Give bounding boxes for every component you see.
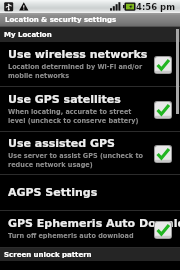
staticText: When locating, accurate to street — [8, 108, 132, 116]
button[interactable]: GPS Ephemeris Auto Download — [0, 211, 180, 248]
button[interactable]: Use GPS satellites — [0, 87, 180, 132]
staticText: Use server to assist GPS (uncheck to — [8, 152, 144, 160]
button[interactable]: Use assisted GPS — [0, 132, 180, 175]
staticText: reduce network usage) — [8, 161, 93, 169]
staticText: GPS Ephemeris Auto Download — [8, 217, 180, 230]
staticText: Use GPS satellites — [8, 93, 121, 106]
staticText: 4:56 pm — [136, 2, 176, 12]
staticText: Use wireless networks — [8, 48, 148, 61]
staticText: Turn off ephemeris auto download — [8, 232, 134, 240]
staticText: Screen unlock pattern — [4, 251, 92, 259]
staticText: My Location — [4, 31, 52, 39]
button[interactable]: AGPS Settings — [0, 175, 180, 211]
staticText: level (uncheck to conserve battery) — [8, 117, 139, 125]
staticText: Location & security settings — [5, 16, 117, 24]
staticText: mobile networks — [8, 72, 70, 80]
staticText: AGPS Settings — [8, 186, 98, 199]
staticText: Use assisted GPS — [8, 137, 116, 150]
staticText: Location determined by Wi-Fi and/or — [8, 63, 143, 71]
button[interactable]: Use wireless networks — [0, 42, 180, 87]
